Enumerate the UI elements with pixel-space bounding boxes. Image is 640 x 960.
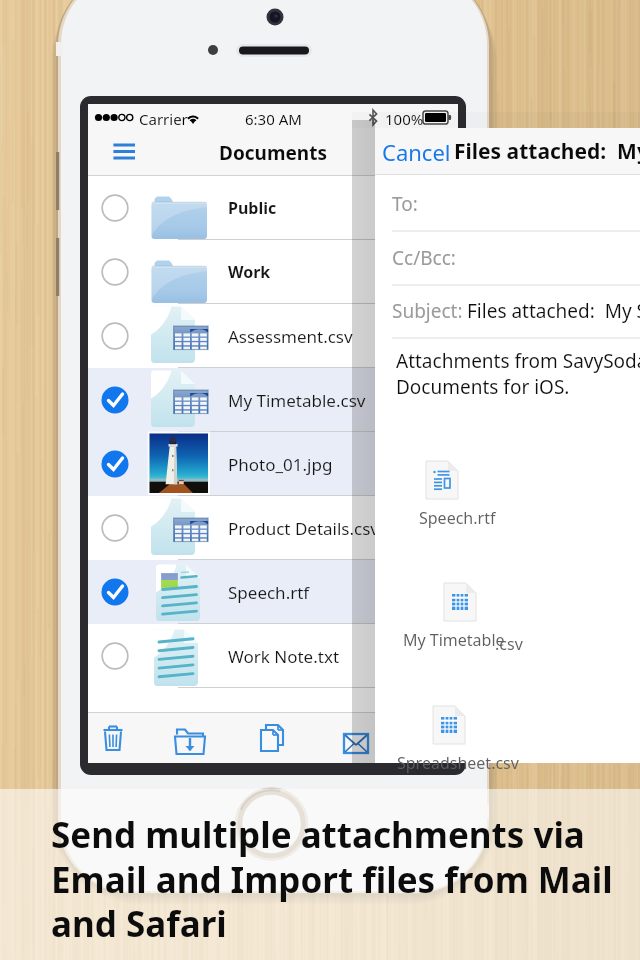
button[interactable]: Move to folder <box>170 726 210 756</box>
staticText: To: <box>392 191 418 217</box>
staticText: Send multiple attachments via Email and … <box>51 811 640 947</box>
button[interactable]: Work Note.txt <box>88 624 458 688</box>
staticText: Spreadsheet.csv <box>397 752 519 774</box>
button[interactable]: Assessment.csv <box>88 304 458 368</box>
staticText: 6:30 AM <box>245 109 302 129</box>
button[interactable]: Work <box>88 240 458 304</box>
button[interactable]: Email <box>339 731 373 757</box>
staticText: My Timetable <box>403 629 505 651</box>
staticText: Work <box>228 261 271 283</box>
staticText: Carrier <box>139 109 188 129</box>
staticText: Documents <box>219 140 327 166</box>
staticText: Files attached: My Sp <box>467 298 640 324</box>
button[interactable]: Speech.rtf <box>88 560 458 624</box>
staticText: Work Note.txt <box>228 645 340 668</box>
button[interactable]: My Timetable <box>403 583 573 645</box>
staticText: Speech.rtf <box>228 581 310 604</box>
staticText: Speech.rtf <box>419 507 496 529</box>
button[interactable]: My Timetable.csv <box>88 368 458 432</box>
button[interactable]: Menu <box>107 138 140 166</box>
staticText: Files attached: My S <box>454 137 640 166</box>
button[interactable]: Photo_01.jpg <box>88 432 458 496</box>
button[interactable]: Copy <box>258 723 290 756</box>
staticText: Cc/Bcc: <box>392 245 456 271</box>
button[interactable]: Speech.rtf <box>419 461 589 523</box>
button[interactable]: Delete <box>98 724 128 756</box>
staticText: Photo_01.jpg <box>228 453 333 476</box>
button[interactable]: Product Details.csv <box>88 496 458 560</box>
staticText: My Timetable.csv <box>228 389 366 412</box>
staticText: .csv <box>495 633 523 655</box>
staticText: Attachments from SavySoda Documents for … <box>396 348 640 400</box>
staticText: Public <box>228 197 277 219</box>
button[interactable]: Spreadsheet.csv <box>397 706 567 768</box>
staticText: Product Details.csv <box>228 517 380 540</box>
button[interactable]: Public <box>88 176 458 240</box>
staticText: Assessment.csv <box>228 325 353 348</box>
staticText: 100% <box>385 109 424 129</box>
staticText: Subject: <box>392 298 463 324</box>
button[interactable]: Cancel <box>382 137 451 167</box>
